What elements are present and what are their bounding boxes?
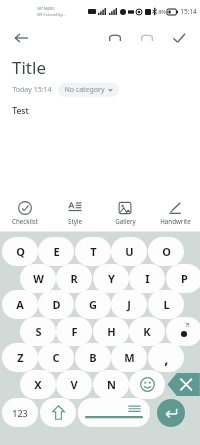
button[interactable]: E: [38, 237, 74, 266]
button[interactable]: I: [129, 264, 165, 293]
button[interactable]: M: [111, 343, 147, 372]
staticText: W: [33, 271, 44, 286]
button[interactable]: Gallery: [102, 199, 148, 227]
button[interactable]: V: [56, 370, 92, 399]
staticText: Today 15:14: [12, 85, 52, 95]
staticText: Q: [16, 244, 25, 259]
staticText: N: [107, 377, 116, 392]
button[interactable]: R: [56, 264, 92, 293]
button[interactable]: Period: [166, 317, 200, 346]
button[interactable]: Space: [78, 398, 150, 427]
staticText: I: [145, 271, 150, 286]
staticText: C: [52, 350, 60, 365]
button[interactable]: Q: [2, 237, 38, 266]
button[interactable]: D: [38, 290, 74, 319]
button[interactable]: P: [166, 264, 200, 293]
staticText: T: [90, 244, 97, 259]
button[interactable]: Comma: [148, 343, 184, 372]
button[interactable]: U: [111, 237, 147, 266]
staticText: A: [16, 297, 24, 312]
button[interactable]: Z: [2, 343, 38, 372]
button[interactable]: C: [38, 343, 74, 372]
staticText: Y: [108, 271, 115, 286]
button[interactable]: Backspace: [166, 370, 200, 399]
staticText: ?!: [185, 321, 190, 328]
staticText: 8%: [158, 8, 166, 15]
staticText: R: [70, 271, 78, 286]
staticText: E: [53, 244, 60, 259]
staticText: Gallery: [115, 217, 136, 225]
button[interactable]: L: [148, 290, 184, 319]
staticText: L: [163, 297, 170, 312]
staticText: ,: [164, 348, 169, 368]
button[interactable]: Style: [52, 199, 98, 227]
button[interactable]: Shift: [40, 398, 76, 427]
staticText: Title: [12, 56, 46, 79]
button[interactable]: H: [93, 317, 129, 346]
staticText: 123: [12, 407, 28, 419]
staticText: O: [162, 244, 171, 259]
button[interactable]: Checklist: [2, 199, 48, 227]
staticText: Test: [12, 105, 29, 117]
button[interactable]: Redo: [134, 25, 160, 51]
button[interactable]: W: [20, 264, 56, 293]
staticText: G: [89, 297, 97, 312]
staticText: D: [52, 297, 61, 312]
staticText: M: [124, 350, 135, 365]
button[interactable]: T: [75, 237, 111, 266]
button[interactable]: Handwrite: [152, 199, 198, 227]
staticText: V: [70, 377, 78, 392]
button[interactable]: S: [20, 317, 56, 346]
button[interactable]: Enter: [153, 398, 189, 427]
staticText: Style: [68, 217, 82, 225]
button[interactable]: J: [111, 290, 147, 319]
staticText: X: [34, 377, 42, 392]
button[interactable]: Back: [8, 25, 34, 51]
button[interactable]: No category: [58, 83, 119, 97]
staticText: 15:14: [180, 7, 197, 16]
button[interactable]: Undo: [102, 25, 128, 51]
staticText: MY CelcomDigi...: [37, 12, 66, 17]
staticText: F: [71, 324, 78, 339]
staticText: P: [181, 271, 188, 286]
staticText: No category: [64, 85, 105, 95]
staticText: Handwrite: [160, 217, 191, 225]
staticText: H: [107, 324, 116, 339]
button[interactable]: X: [20, 370, 56, 399]
button[interactable]: K: [129, 317, 165, 346]
staticText: K: [143, 324, 151, 339]
button[interactable]: N: [93, 370, 129, 399]
button[interactable]: A: [2, 290, 38, 319]
button[interactable]: Emoji: [129, 370, 165, 399]
button[interactable]: G: [75, 290, 111, 319]
button[interactable]: F: [56, 317, 92, 346]
button[interactable]: O: [148, 237, 184, 266]
button[interactable]: Save: [166, 25, 192, 51]
staticText: Z: [17, 350, 24, 365]
staticText: MY MAXIS: [37, 6, 55, 11]
staticText: B: [89, 350, 97, 365]
staticText: Checklist: [12, 217, 38, 225]
staticText: J: [127, 297, 131, 312]
staticText: U: [125, 244, 134, 259]
button[interactable]: B: [75, 343, 111, 372]
button[interactable]: Y: [93, 264, 129, 293]
staticText: S: [35, 324, 42, 339]
button[interactable]: Numbers: [2, 398, 38, 427]
